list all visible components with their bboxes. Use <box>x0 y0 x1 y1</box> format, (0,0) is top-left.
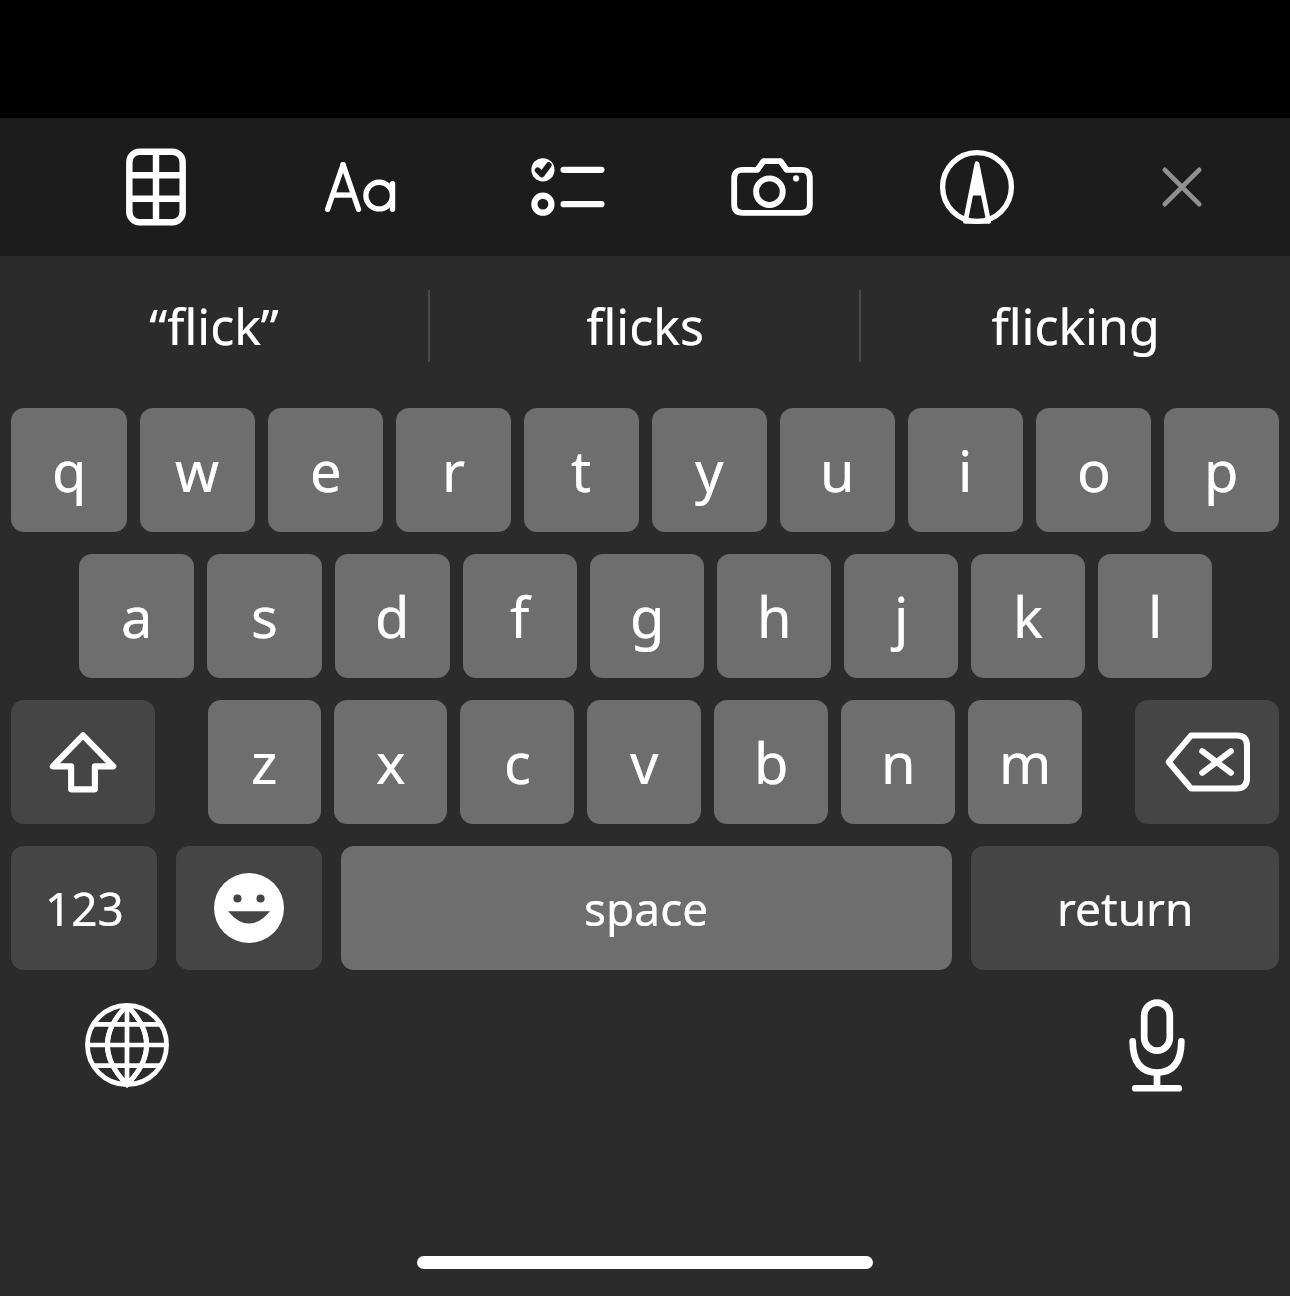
staticText: w <box>175 432 220 508</box>
staticText: m <box>999 724 1052 800</box>
staticText: v <box>630 724 659 800</box>
button[interactable]: Shift <box>11 700 155 824</box>
staticText: q <box>52 432 87 508</box>
button[interactable]: i <box>908 408 1023 532</box>
button[interactable]: Markup <box>929 132 1025 242</box>
button[interactable]: w <box>140 408 255 532</box>
staticText: o <box>1077 432 1111 508</box>
button[interactable]: Change keyboard <box>62 980 192 1110</box>
staticText: y <box>695 432 724 508</box>
staticText: t <box>571 432 592 508</box>
button[interactable]: h <box>717 554 831 678</box>
button[interactable]: y <box>652 408 767 532</box>
button[interactable]: c <box>460 700 574 824</box>
button[interactable]: b <box>714 700 828 824</box>
button[interactable]: 123 <box>11 846 157 970</box>
staticText: flicking <box>991 292 1160 360</box>
staticText: j <box>894 578 909 654</box>
button[interactable]: a <box>79 554 194 678</box>
button[interactable]: “flick” <box>0 256 428 396</box>
button[interactable]: v <box>587 700 701 824</box>
button[interactable]: u <box>780 408 895 532</box>
button[interactable]: s <box>207 554 322 678</box>
button[interactable]: r <box>396 408 511 532</box>
button[interactable]: p <box>1164 408 1279 532</box>
staticText: return <box>1057 877 1194 940</box>
staticText: x <box>376 724 406 800</box>
staticText: space <box>584 877 709 940</box>
button[interactable]: t <box>524 408 639 532</box>
button[interactable]: Checklist <box>519 132 615 242</box>
staticText: z <box>251 724 278 800</box>
button[interactable]: space <box>341 846 952 970</box>
button[interactable]: q <box>11 408 127 532</box>
button[interactable]: f <box>463 554 577 678</box>
button[interactable]: l <box>1098 554 1212 678</box>
staticText: c <box>504 724 531 800</box>
staticText: flicks <box>586 292 704 360</box>
button[interactable]: Camera <box>724 132 820 242</box>
staticText: e <box>310 432 342 508</box>
staticText: k <box>1013 578 1043 654</box>
staticText: l <box>1148 578 1163 654</box>
button[interactable]: Dictate <box>1092 980 1222 1110</box>
button[interactable]: d <box>335 554 450 678</box>
staticText: 123 <box>45 877 124 940</box>
staticText: h <box>757 578 792 654</box>
button[interactable]: k <box>971 554 1085 678</box>
staticText: u <box>820 432 855 508</box>
button[interactable]: flicking <box>861 256 1290 396</box>
button[interactable]: Text format <box>314 132 410 242</box>
staticText: n <box>881 724 916 800</box>
button[interactable]: n <box>841 700 955 824</box>
button[interactable]: o <box>1036 408 1151 532</box>
staticText: r <box>442 432 466 508</box>
button[interactable]: Backspace <box>1135 700 1279 824</box>
button[interactable]: x <box>334 700 447 824</box>
staticText: i <box>958 432 973 508</box>
button[interactable]: Emoji <box>176 846 322 970</box>
button[interactable]: Close <box>1134 132 1230 242</box>
button[interactable]: return <box>971 846 1279 970</box>
staticText: a <box>121 578 153 654</box>
staticText: “flick” <box>149 292 279 360</box>
staticText: d <box>375 578 410 654</box>
button[interactable]: j <box>844 554 958 678</box>
staticText: s <box>251 578 278 654</box>
staticText: b <box>754 724 789 800</box>
staticText: f <box>510 578 530 654</box>
button[interactable]: e <box>268 408 383 532</box>
button[interactable]: g <box>590 554 704 678</box>
staticText: p <box>1204 432 1239 508</box>
button[interactable]: flicks <box>430 256 859 396</box>
staticText: g <box>630 578 665 654</box>
button[interactable]: m <box>968 700 1082 824</box>
button[interactable]: z <box>208 700 321 824</box>
button[interactable]: Table <box>108 132 204 242</box>
